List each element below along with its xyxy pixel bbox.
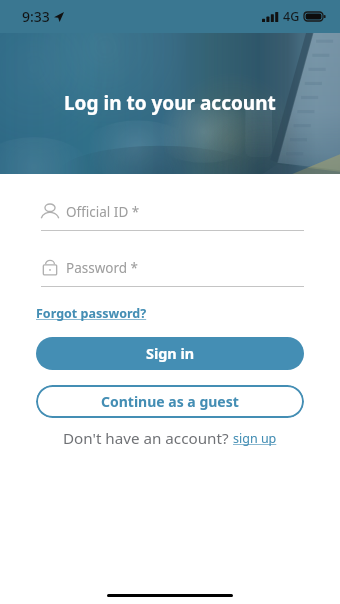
staticText: Log in to your account <box>64 90 276 116</box>
staticText: 4G <box>283 8 300 25</box>
button[interactable]: Sign in <box>36 337 304 370</box>
staticText: Sign in <box>146 344 195 364</box>
staticText: Password * <box>66 259 139 277</box>
button[interactable]: sign up <box>233 430 277 447</box>
staticText: Don't have an account? <box>63 428 233 449</box>
staticText: Forgot password? <box>36 305 147 322</box>
button[interactable]: Forgot password? <box>36 305 147 322</box>
staticText: Official ID * <box>66 203 140 221</box>
button[interactable]: Continue as a guest <box>36 385 304 418</box>
staticText: 9:33 <box>22 7 50 26</box>
staticText: sign up <box>233 430 277 447</box>
staticText: Continue as a guest <box>101 392 239 411</box>
